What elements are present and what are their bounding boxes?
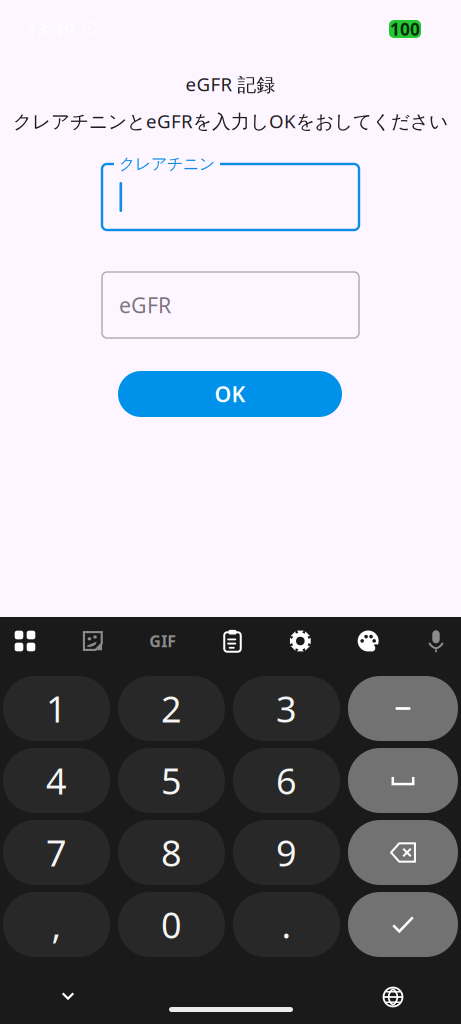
staticText: eGFR 記録 (185, 72, 275, 96)
staticText: 3 (276, 685, 297, 732)
staticText: クレアチニンとeGFRを入力しOKをおしてください (13, 109, 448, 133)
staticText: 100 (390, 17, 420, 40)
button[interactable]: 5 (118, 748, 225, 813)
button[interactable]: Enter (348, 892, 458, 957)
button[interactable]: Voice input (422, 628, 450, 654)
button[interactable]: GIF (147, 628, 179, 654)
staticText: 9 (276, 829, 297, 876)
staticText: eGFR (119, 291, 171, 319)
button[interactable]: Clipboard (218, 628, 246, 654)
button[interactable]: 3 (233, 676, 340, 741)
button[interactable]: , (3, 892, 110, 957)
staticText: 4 (46, 757, 67, 804)
staticText: GIF (149, 630, 176, 652)
button[interactable]: Change language (369, 977, 417, 1017)
button[interactable]: 7 (3, 820, 110, 885)
button[interactable]: . (233, 892, 340, 957)
button[interactable]: Backspace (348, 820, 458, 885)
button[interactable]: Space (348, 748, 458, 813)
staticText: 5 (161, 757, 182, 804)
button[interactable]: 4 (3, 748, 110, 813)
staticText: , (51, 901, 61, 948)
button[interactable]: 8 (118, 820, 225, 885)
staticText: 8 (161, 829, 182, 876)
button[interactable]: Stickers (79, 628, 107, 654)
button[interactable]: Apps (11, 628, 39, 654)
button[interactable]: Hide keyboard (44, 976, 92, 1016)
button[interactable]: Minus (348, 676, 458, 741)
button[interactable]: 0 (118, 892, 225, 957)
staticText: 2 (161, 685, 182, 732)
button[interactable]: 1 (3, 676, 110, 741)
staticText: OK (214, 380, 245, 408)
button[interactable]: Settings (286, 628, 314, 654)
staticText: クレアチニン (119, 154, 215, 174)
button[interactable]: Theme (354, 628, 382, 654)
button[interactable]: 9 (233, 820, 340, 885)
staticText: 7 (46, 829, 67, 876)
staticText: . (281, 901, 291, 948)
button[interactable]: 2 (118, 676, 225, 741)
staticText: 0 (161, 901, 182, 948)
button[interactable]: OK (118, 371, 342, 417)
button[interactable]: 6 (233, 748, 340, 813)
staticText: 1 (46, 685, 67, 732)
staticText: 6 (276, 757, 297, 804)
